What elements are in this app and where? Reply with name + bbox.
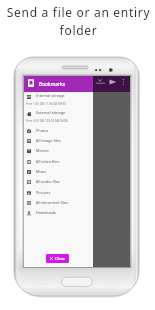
button[interactable]: Music: [24, 167, 93, 177]
button[interactable]: All image files: [24, 136, 93, 146]
staticText: Internal storage: [36, 93, 65, 98]
staticText: All audio files: [36, 179, 60, 184]
staticText: All video files: [36, 159, 60, 164]
staticText: All document files: [36, 200, 68, 205]
button[interactable]: Photos: [24, 126, 93, 136]
staticText: Movies: [36, 148, 49, 153]
button[interactable]: External storage: [24, 109, 93, 126]
button[interactable]: Movies: [24, 146, 93, 156]
button[interactable]: Close: [46, 254, 69, 263]
staticText: Pictures: [36, 190, 51, 195]
button[interactable]: All document files: [24, 198, 93, 208]
staticText: Free 4.59 GB / 29.03 MB (84%): [26, 119, 69, 123]
staticText: Bookmarks: [39, 81, 66, 88]
button[interactable]: Pictures: [24, 188, 93, 198]
staticText: External storage: [36, 110, 66, 115]
button[interactable]: Internal storage: [24, 92, 93, 109]
staticText: Close: [55, 256, 66, 261]
button[interactable]: Downloads: [24, 208, 93, 218]
button[interactable]: All video files: [24, 157, 93, 167]
button[interactable]: More options: [121, 78, 126, 87]
staticText: Send a file or an entiry folder: [3, 4, 154, 38]
button[interactable]: All audio files: [24, 177, 93, 187]
button[interactable]: Sort order: [95, 78, 105, 86]
staticText: Music: [36, 169, 47, 174]
button[interactable]: Send: [108, 78, 118, 86]
staticText: Photos: [36, 128, 49, 133]
staticText: Free 1.65 GB / 1.94 GB (85%): [26, 102, 66, 106]
staticText: All image files: [36, 138, 61, 143]
button[interactable]: Bookmarks: [24, 76, 93, 92]
staticText: Downloads: [36, 210, 56, 215]
